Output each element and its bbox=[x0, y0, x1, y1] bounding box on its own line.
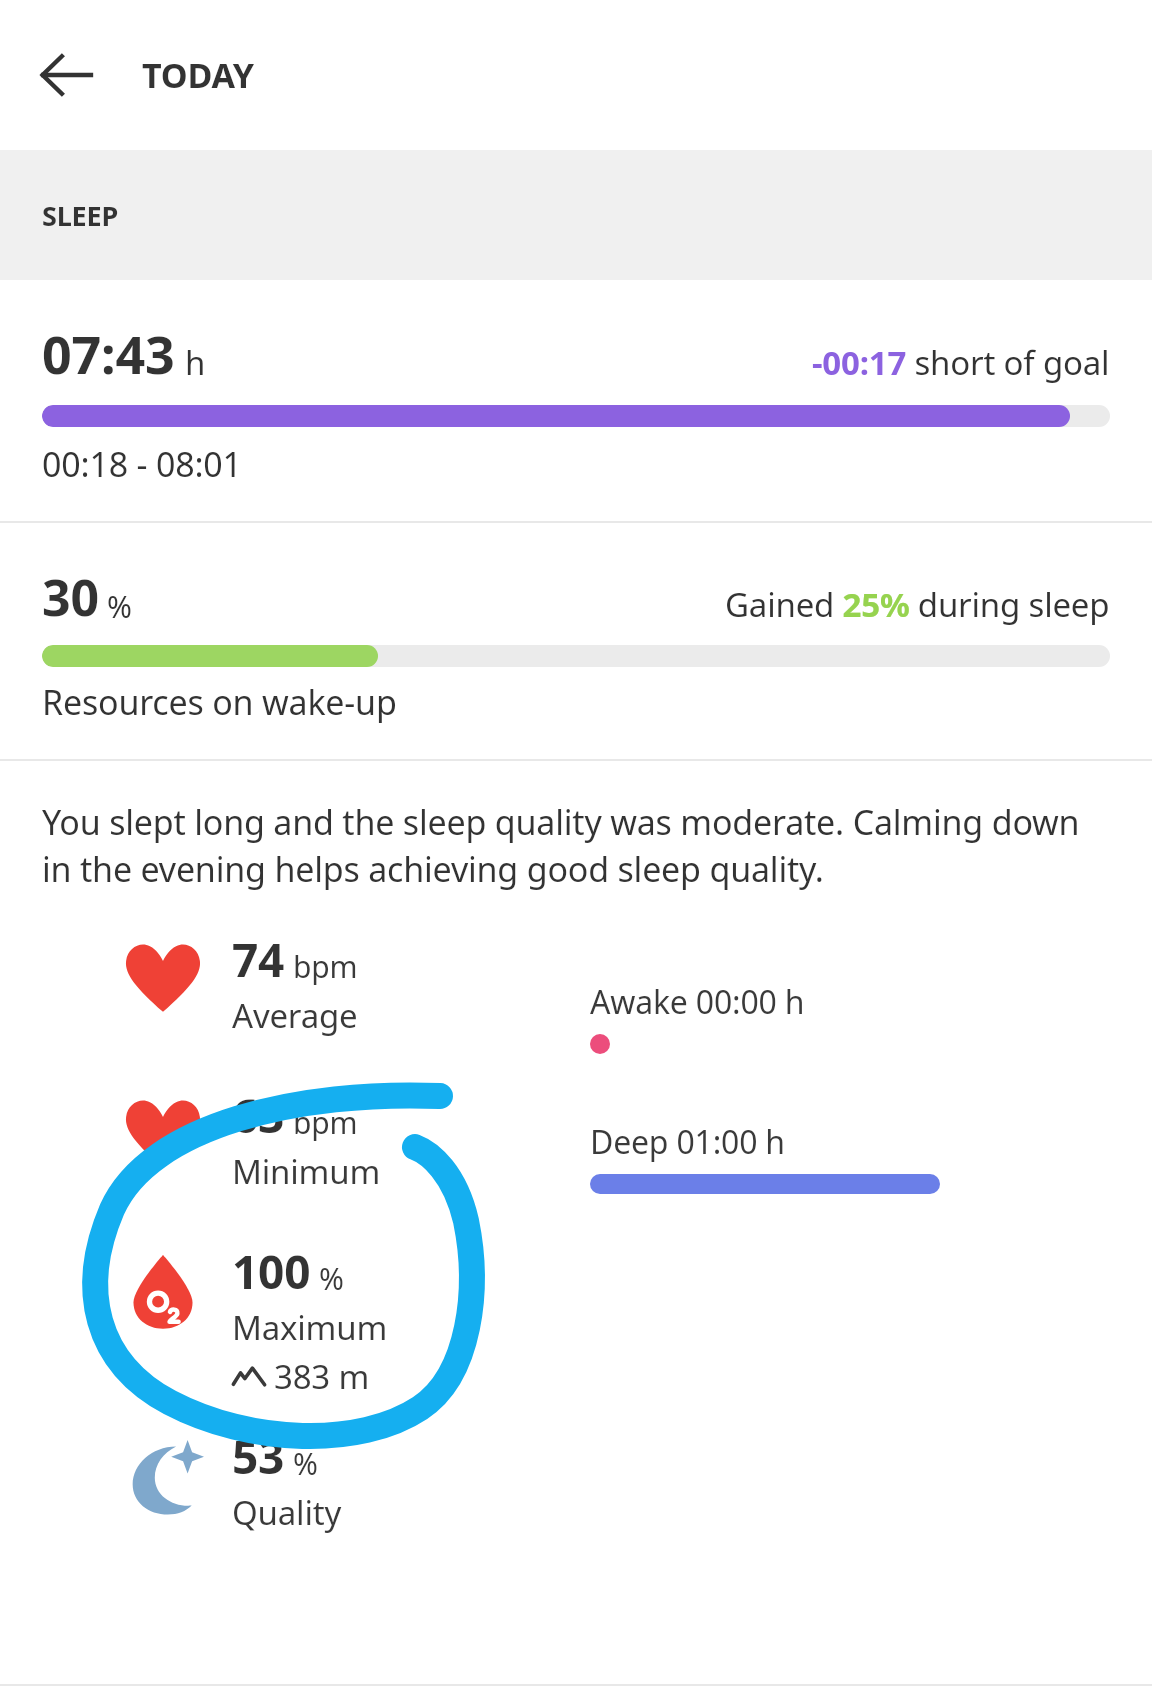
staticText: Minimum bbox=[232, 1149, 381, 1194]
staticText: 53 bbox=[232, 1425, 285, 1488]
staticText: SLEEP bbox=[42, 197, 118, 234]
button[interactable]: 63 bbox=[0, 1084, 1152, 1194]
staticText: Resources on wake-up bbox=[42, 679, 397, 725]
staticText: Quality bbox=[232, 1490, 342, 1535]
button[interactable]: Back bbox=[30, 39, 102, 111]
staticText: Maximum bbox=[232, 1305, 388, 1350]
staticText: 383 m bbox=[274, 1354, 370, 1399]
staticText: bpm bbox=[293, 946, 358, 987]
staticText: Gained 25% during sleep bbox=[725, 582, 1110, 627]
button[interactable]: 100 bbox=[0, 1240, 1152, 1399]
staticText: 63 bbox=[232, 1084, 285, 1147]
staticText: Deep 01:00 h bbox=[590, 1120, 785, 1164]
staticText: You slept long and the sleep quality was… bbox=[42, 799, 1110, 892]
button[interactable]: 74 bbox=[0, 928, 1152, 1038]
staticText: Awake 00:00 h bbox=[590, 980, 805, 1024]
staticText: bpm bbox=[293, 1102, 358, 1143]
staticText: -00:17 short of goal bbox=[812, 340, 1110, 385]
staticText: TODAY bbox=[142, 52, 254, 98]
staticText: 74 bbox=[232, 928, 285, 991]
staticText: Average bbox=[232, 993, 358, 1038]
button[interactable]: 53 bbox=[0, 1425, 1152, 1535]
staticText: 30 bbox=[42, 563, 99, 631]
staticText: 100 bbox=[232, 1240, 311, 1303]
staticText: 07:43 bbox=[42, 318, 175, 389]
staticText: % bbox=[107, 586, 132, 627]
staticText: 00:18 - 08:01 bbox=[42, 441, 242, 487]
staticText: h bbox=[185, 340, 206, 385]
staticText: % bbox=[293, 1443, 318, 1484]
staticText: % bbox=[319, 1258, 344, 1299]
